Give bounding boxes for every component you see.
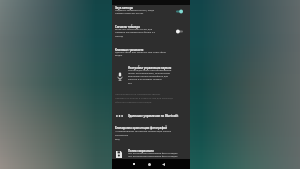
staticText: Удаленное управление по Bluetooth: [128, 114, 179, 118]
staticText: Сигналы таймера: [115, 25, 140, 29]
staticText: Мы используем сохранения фото и видео: [128, 151, 189, 154]
staticText: таймер закончит отсчёт: [115, 11, 189, 14]
staticText: его: [128, 81, 189, 84]
button[interactable]: Папка сохранения: [128, 149, 189, 153]
staticText: Включать обратный отсчёт для: [115, 27, 189, 30]
staticText: Игнорировании системной ориентации экран…: [115, 129, 189, 132]
staticText: внешнюю кнопку микрофона для: [128, 74, 189, 77]
staticText: Папка сохранения: [128, 149, 154, 153]
button[interactable]: Звук затвора: [115, 6, 189, 10]
staticText: Настройки управления звуком: [128, 66, 172, 70]
button[interactable]: Сигналы таймера: [115, 25, 189, 29]
button[interactable]: More options: [116, 115, 123, 117]
staticText: Мы используем сохранения фото и видео: [128, 154, 189, 157]
button[interactable]: Удаленное управление по Bluetooth: [128, 114, 189, 118]
staticText: устройства: [115, 133, 189, 136]
button[interactable]: Клавиши громкости: [115, 48, 189, 52]
button[interactable]: Блокировка ориентации фотографий: [115, 126, 189, 130]
button[interactable]: Microphone: [117, 72, 123, 81]
staticText: Нажмите на кнопку и снова на нее для пер…: [115, 96, 189, 99]
button[interactable]: Настройки управления звуком: [128, 66, 189, 70]
staticText: секунд: [115, 34, 189, 37]
button[interactable]: Switch off: [176, 29, 183, 34]
staticText: Сначала доступно при обнаружении: [128, 68, 189, 71]
staticText: таймера поставленного более 3-х: [115, 30, 189, 33]
staticText: Блокировка ориентации фотографий: [115, 126, 168, 130]
staticText: Подавать звуковой сигнал, когда: [115, 8, 189, 11]
staticText: запуска и остановки съёмки: [128, 77, 189, 80]
staticText: Приглашаются на управление звуком.: [115, 92, 189, 95]
button[interactable]: Recents: [130, 160, 138, 168]
staticText: вид: [115, 137, 189, 140]
staticText: Клавиши громкости: [115, 48, 144, 52]
button[interactable]: Home: [145, 160, 153, 168]
staticText: Звук затвора: [115, 6, 133, 10]
button[interactable]: Back: [159, 160, 167, 168]
staticText: Сделать фото или записать или снять фото: [115, 50, 189, 53]
staticText: видео: [115, 53, 189, 56]
staticText: шума. Если включено, используйте: [128, 71, 189, 74]
staticText: обычного режима трансляции.: [115, 100, 189, 103]
button[interactable]: Save folder: [116, 151, 122, 158]
button[interactable]: Switch on: [176, 9, 183, 14]
